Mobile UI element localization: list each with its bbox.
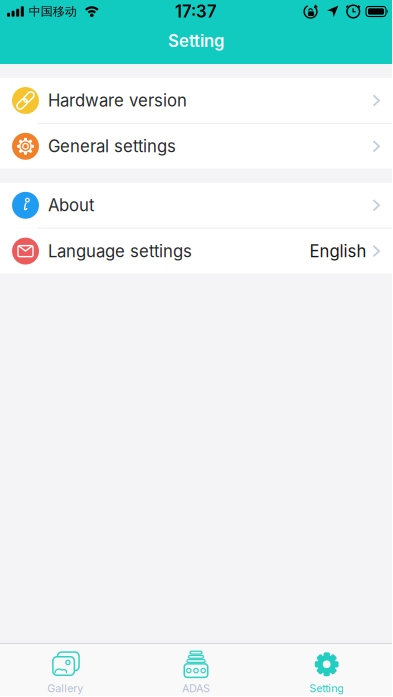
button[interactable]: General settings <box>0 124 392 169</box>
staticText: Gallery <box>47 682 83 695</box>
staticText: 中国移动 <box>29 4 77 19</box>
staticText: Language settings <box>48 241 192 261</box>
staticText: 17:37 <box>175 1 217 22</box>
staticText: ADAS <box>182 682 210 695</box>
staticText: Setting <box>168 31 224 51</box>
button[interactable]: Gallery <box>0 651 131 695</box>
button[interactable]: Hardware version <box>0 78 392 123</box>
staticText: English <box>309 241 366 261</box>
button[interactable]: About <box>0 183 392 228</box>
button[interactable]: Language settings <box>0 229 392 274</box>
button[interactable]: Setting <box>261 651 392 695</box>
staticText: Setting <box>309 682 344 695</box>
staticText: General settings <box>48 136 176 156</box>
staticText: Hardware version <box>48 90 187 111</box>
staticText: About <box>48 195 94 215</box>
button[interactable]: ADAS <box>131 651 261 695</box>
